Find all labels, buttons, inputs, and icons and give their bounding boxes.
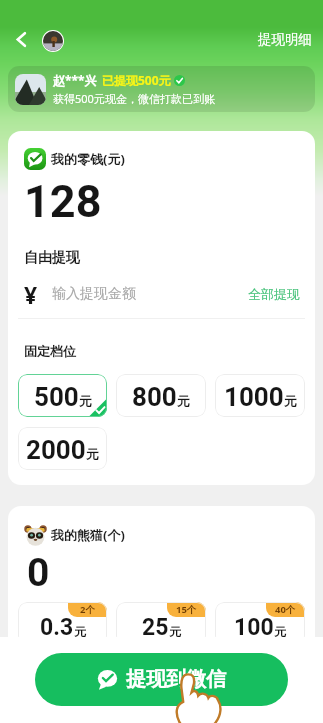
staticText: 元	[169, 624, 181, 639]
staticText: 500	[34, 382, 79, 412]
staticText: 我的零钱(元)	[51, 150, 125, 168]
staticText: 元	[284, 393, 297, 409]
staticText: 我的熊猫(个)	[51, 526, 125, 544]
staticText: 元	[177, 393, 190, 409]
button[interactable]: 赵***兴	[8, 66, 315, 112]
button[interactable]: Back	[6, 24, 37, 55]
staticText: 元	[274, 624, 286, 639]
staticText: 元	[86, 446, 99, 462]
staticText: 128	[24, 175, 102, 228]
staticText: 2000	[26, 435, 86, 465]
staticText: 元	[74, 624, 86, 639]
staticText: 2个	[80, 603, 95, 616]
staticText: 赵***兴	[53, 72, 97, 88]
staticText: 0.3	[40, 614, 74, 641]
staticText: 已提现500元	[102, 72, 171, 88]
staticText: 1000	[224, 382, 284, 412]
staticText: 0	[27, 550, 50, 596]
staticText: 元	[79, 393, 92, 409]
button[interactable]: 500	[18, 374, 107, 417]
button[interactable]: 提现明细	[258, 31, 323, 48]
button[interactable]: 40个	[215, 602, 305, 645]
button[interactable]: 2个	[18, 602, 107, 645]
button[interactable]: Profile	[43, 31, 63, 51]
staticText: 自由提现	[24, 249, 80, 267]
staticText: 15个	[176, 603, 197, 616]
staticText: ¥	[24, 279, 38, 309]
staticText: 40个	[275, 603, 296, 616]
staticText: 25	[142, 614, 169, 641]
staticText: 100	[234, 614, 274, 641]
button[interactable]: 1000	[215, 374, 305, 417]
button[interactable]: 800	[116, 374, 206, 417]
button[interactable]: 全部提现	[248, 286, 300, 302]
staticText: 获得500元现金，微信打款已到账	[53, 91, 215, 106]
staticText: 固定档位	[24, 343, 76, 359]
button[interactable]: 提现到微信	[35, 653, 288, 706]
button[interactable]: 2000	[18, 427, 107, 470]
staticText: 800	[132, 382, 177, 412]
button[interactable]: 15个	[116, 602, 206, 645]
staticText: 输入提现金额	[52, 285, 136, 303]
staticText: 提现到微信	[126, 667, 226, 692]
